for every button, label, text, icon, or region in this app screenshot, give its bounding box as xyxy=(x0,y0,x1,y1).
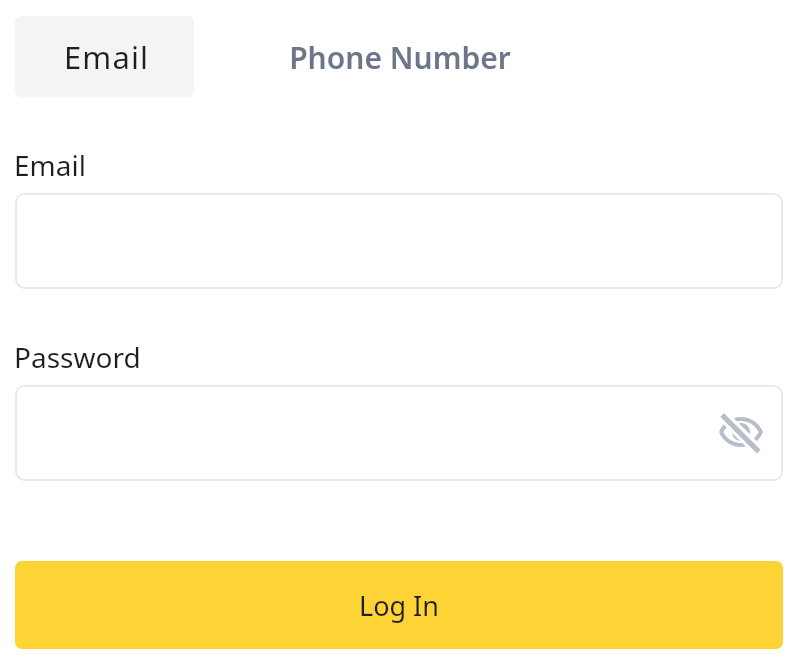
button[interactable]: Email xyxy=(15,16,194,97)
button[interactable]: Phone Number xyxy=(250,17,550,98)
button[interactable]: Show password xyxy=(15,385,783,481)
staticText: Phone Number xyxy=(289,37,511,78)
staticText: Email xyxy=(14,146,86,184)
button[interactable]: Log In xyxy=(15,561,783,649)
button[interactable] xyxy=(15,193,783,289)
button[interactable]: Show password xyxy=(715,407,767,459)
staticText: Password xyxy=(14,338,141,376)
staticText: Email xyxy=(64,36,150,78)
staticText: Log In xyxy=(359,587,439,624)
